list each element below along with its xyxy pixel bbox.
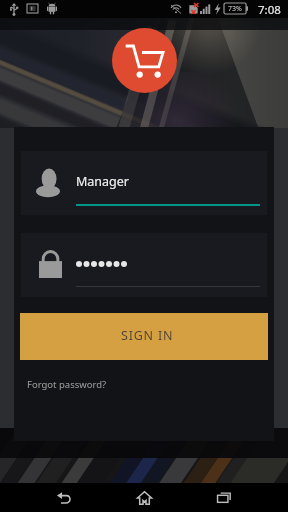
button[interactable]: Manager	[21, 151, 267, 215]
button[interactable]: SIGN IN	[20, 313, 268, 360]
other: Shopping cart logo	[112, 28, 177, 93]
button[interactable]: Back	[24, 483, 104, 512]
button[interactable]: Forgot password?	[27, 378, 107, 391]
button[interactable]: Recents	[184, 483, 264, 512]
staticText: Forgot password?	[27, 378, 107, 391]
staticText: SIGN IN	[121, 327, 174, 344]
staticText: Manager	[76, 173, 129, 190]
staticText: 73%	[228, 4, 242, 14]
staticText: 7:08	[258, 2, 281, 18]
button[interactable]: Home	[104, 483, 184, 512]
button[interactable]	[21, 233, 267, 297]
